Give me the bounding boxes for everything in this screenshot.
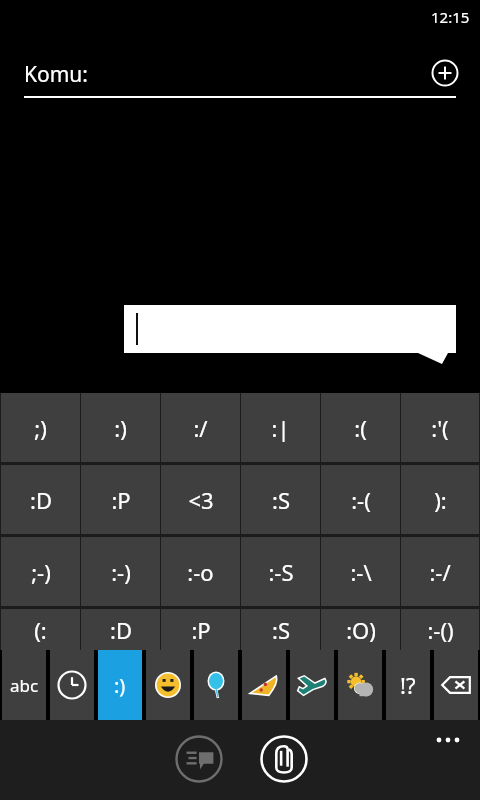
staticText: :) — [114, 672, 126, 699]
staticText: 12:15 — [431, 7, 470, 27]
staticText: ;) — [34, 413, 47, 443]
button[interactable]: :/ — [161, 393, 240, 462]
staticText: :-( — [351, 485, 371, 515]
staticText: :P — [111, 485, 131, 515]
staticText: :O) — [346, 615, 376, 645]
staticText: :S — [272, 485, 290, 515]
button[interactable]: :S — [241, 609, 320, 650]
staticText: :-o — [187, 557, 214, 587]
button[interactable]: :| — [241, 393, 320, 462]
staticText: :| — [271, 413, 290, 443]
staticText: :-/ — [429, 557, 451, 587]
button[interactable]: :-) — [81, 537, 160, 606]
staticText: ;-) — [31, 557, 51, 587]
button[interactable]: Travel — [290, 650, 334, 720]
button[interactable]: Recent — [50, 650, 94, 720]
staticText: (: — [34, 615, 47, 645]
button[interactable]: :'( — [401, 393, 479, 462]
button[interactable]: abc — [2, 650, 46, 720]
button[interactable]: Weather — [338, 650, 382, 720]
button[interactable]: Food — [242, 650, 286, 720]
button[interactable]: <3 — [161, 465, 240, 534]
button[interactable]: Attach — [260, 735, 308, 783]
button[interactable]: Symbols — [386, 650, 430, 720]
staticText: :D — [30, 485, 52, 515]
button[interactable]: :S — [241, 465, 320, 534]
staticText: :S — [272, 615, 290, 645]
button[interactable]: ;) — [1, 393, 80, 462]
button[interactable]: ;-) — [1, 537, 80, 606]
staticText: :/ — [193, 413, 208, 443]
button[interactable]: Add recipient — [430, 58, 460, 88]
button[interactable]: :( — [321, 393, 400, 462]
button[interactable]: :O) — [321, 609, 400, 650]
staticText: Komu: — [24, 60, 88, 89]
button[interactable]: More options — [424, 720, 472, 760]
button[interactable]: :-() — [401, 609, 479, 650]
staticText: :-() — [427, 615, 454, 645]
button[interactable]: :-( — [321, 465, 400, 534]
button[interactable]: :) — [98, 650, 142, 720]
staticText: :( — [354, 413, 367, 443]
staticText: <3 — [188, 485, 214, 515]
staticText: :-S — [268, 557, 294, 587]
button[interactable]: :-o — [161, 537, 240, 606]
button[interactable]: :) — [81, 393, 160, 462]
staticText: ): — [434, 485, 447, 515]
button[interactable]: Celebration — [194, 650, 238, 720]
button[interactable]: :-S — [241, 537, 320, 606]
staticText: :) — [114, 413, 127, 443]
staticText: :'( — [431, 413, 449, 443]
button[interactable]: Smileys — [146, 650, 190, 720]
button[interactable]: :D — [81, 609, 160, 650]
button[interactable]: :-\ — [321, 537, 400, 606]
staticText: abc — [10, 674, 39, 697]
staticText: :P — [191, 615, 211, 645]
button[interactable]: Komu: — [0, 48, 480, 100]
button[interactable]: ): — [401, 465, 479, 534]
button[interactable]: (: — [1, 609, 80, 650]
button[interactable]: :-/ — [401, 537, 479, 606]
staticText: :-) — [111, 557, 131, 587]
staticText: :D — [110, 615, 132, 645]
staticText: !? — [400, 670, 416, 700]
button[interactable]: :P — [81, 465, 160, 534]
button[interactable]: Backspace — [434, 650, 478, 720]
staticText: :-\ — [350, 557, 372, 587]
button[interactable]: Send message — [175, 735, 223, 783]
button[interactable]: :P — [161, 609, 240, 650]
button[interactable]: :D — [1, 465, 80, 534]
